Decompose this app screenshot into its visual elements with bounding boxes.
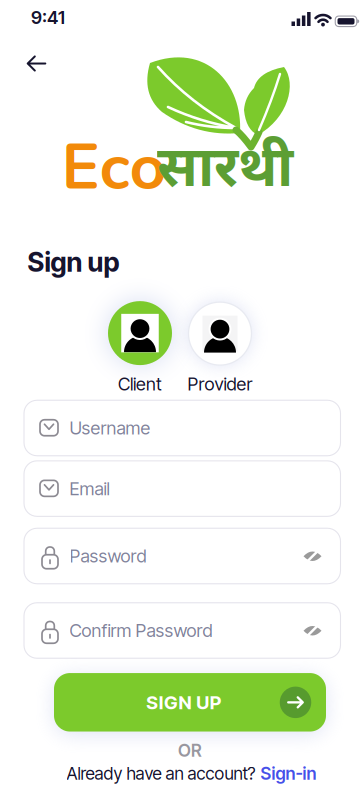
staticText: SIGN UP [146, 691, 221, 714]
staticText: Password [69, 545, 146, 567]
staticText: Eco [61, 124, 166, 211]
button[interactable]: Email [24, 461, 340, 516]
staticText: 9:41 [31, 7, 65, 28]
button[interactable]: Provider [187, 302, 252, 395]
staticText: Client [118, 373, 162, 395]
button[interactable]: Password [24, 528, 340, 584]
button[interactable]: Show password [303, 623, 322, 639]
staticText: Email [69, 478, 109, 499]
staticText: Provider [187, 373, 252, 395]
staticText: सारथी [157, 136, 293, 209]
button[interactable]: Confirm Password [24, 603, 340, 658]
button[interactable]: Client [108, 301, 172, 395]
button[interactable]: Username [24, 400, 340, 456]
button[interactable]: Show password [303, 548, 322, 564]
staticText: Confirm Password [69, 620, 212, 641]
button[interactable]: Back [26, 56, 46, 71]
staticText: Username [69, 417, 150, 439]
button[interactable]: Sign-in [260, 763, 316, 784]
staticText: Already have an account? [66, 763, 255, 784]
staticText: Sign-in [260, 763, 316, 784]
staticText: Sign up [27, 246, 119, 278]
button[interactable]: SIGN UP [54, 673, 326, 731]
staticText: OR [178, 740, 202, 761]
